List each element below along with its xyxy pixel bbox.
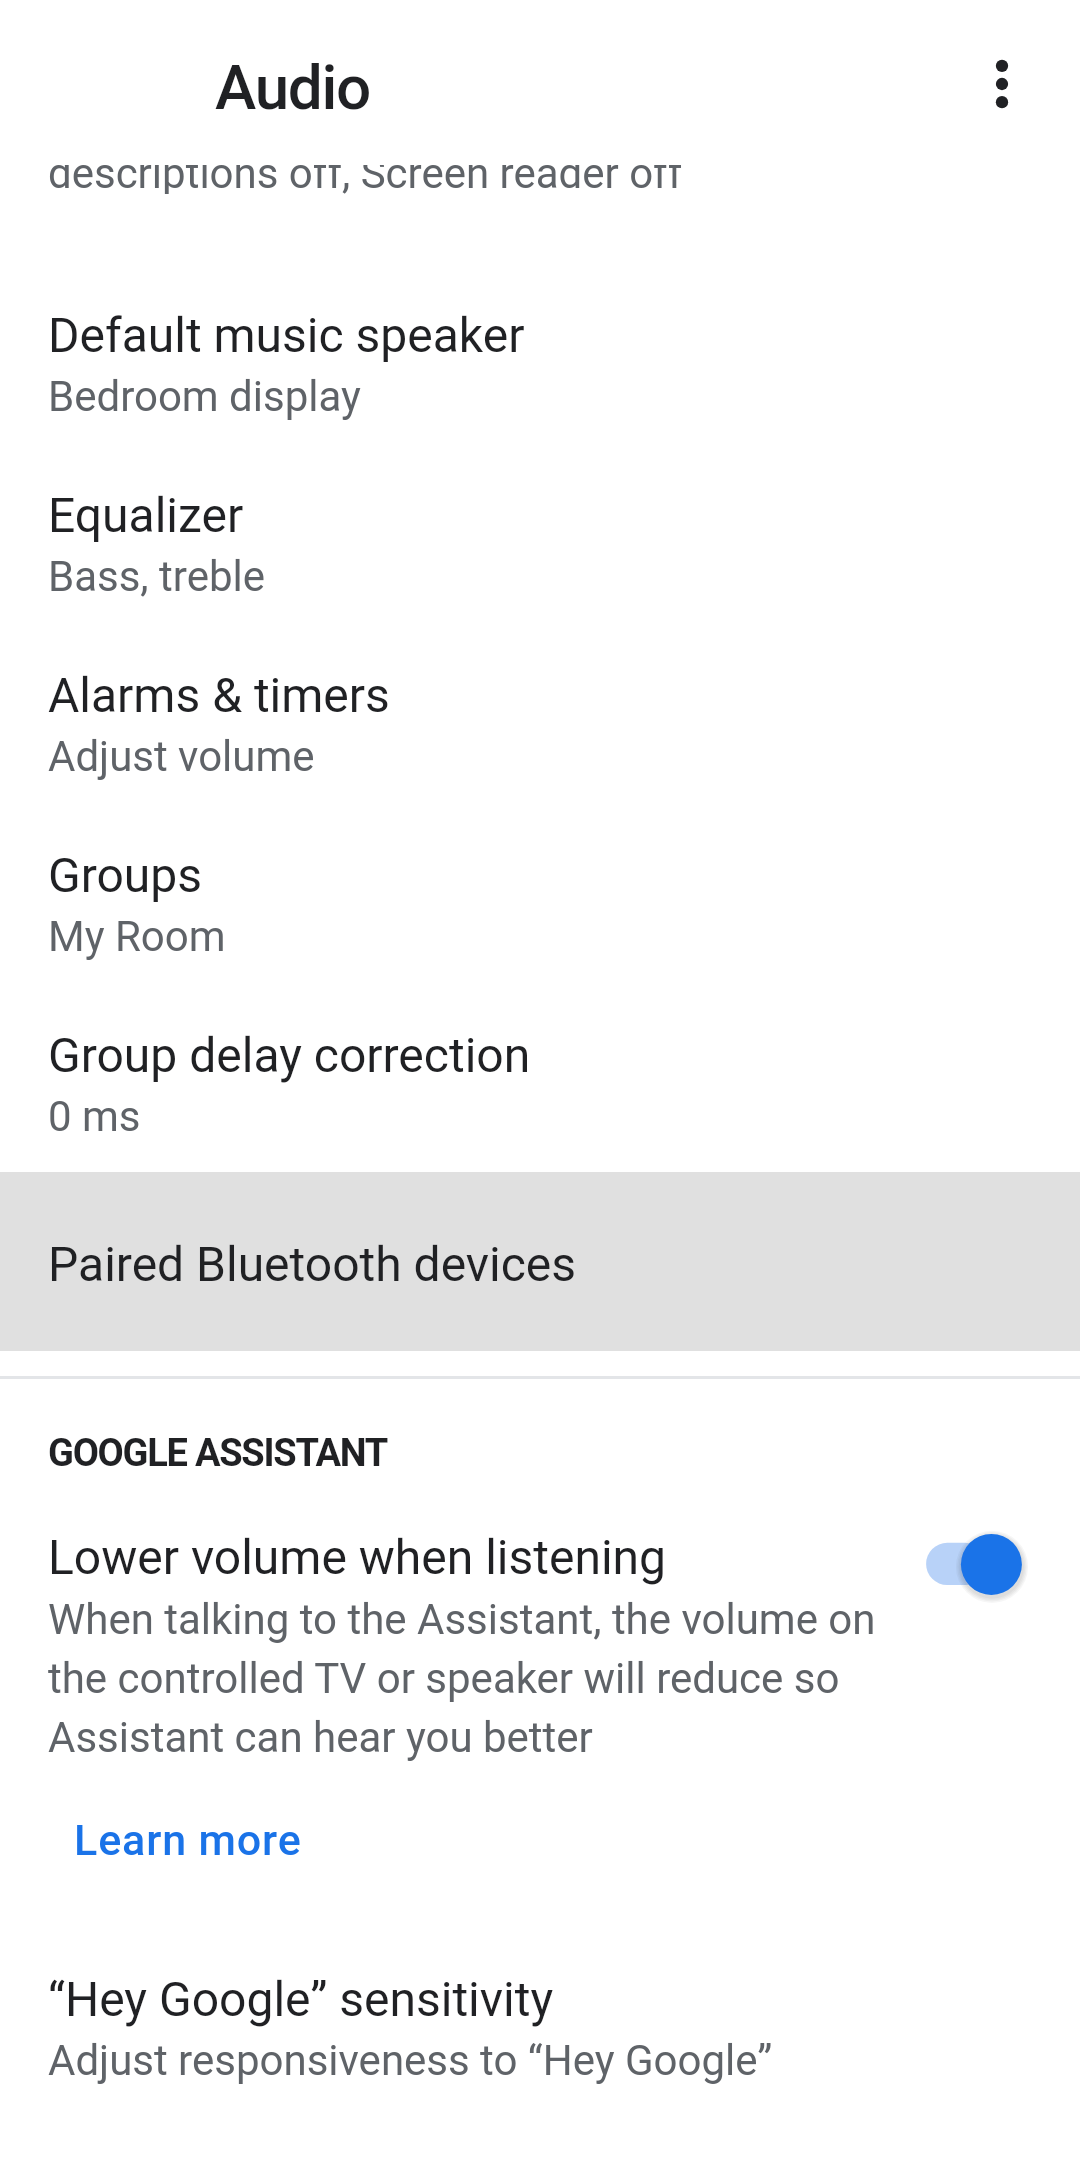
staticText: Default music speaker <box>48 307 525 363</box>
button[interactable]: Alarms & timers <box>0 651 1080 831</box>
staticText: Group delay correction <box>48 1027 531 1083</box>
staticText: Paired Bluetooth devices <box>48 1236 577 1292</box>
button[interactable]: Groups <box>0 831 1080 1011</box>
staticText: Alarms & timers <box>48 667 390 723</box>
button[interactable]: Group delay correction <box>0 1011 1080 1191</box>
staticText: GOOGLE ASSISTANT <box>48 1431 388 1476</box>
staticText: Adjust volume <box>48 732 315 781</box>
staticText: Adjust responsiveness to “Hey Google” <box>48 2036 773 2085</box>
staticText: Lower volume when listening <box>48 1529 667 1585</box>
staticText: 0 ms <box>48 1092 141 1141</box>
button[interactable]: “Hey Google” sensitivity <box>0 1955 1080 2135</box>
button[interactable]: Default music speaker <box>0 291 1080 471</box>
button[interactable]: More options <box>954 36 1050 132</box>
staticText: When talking to the Assistant, the volum… <box>48 1595 888 1762</box>
staticText: My Room <box>48 912 226 961</box>
staticText: “Hey Google” sensitivity <box>48 1971 554 2027</box>
staticText: Audio <box>215 51 371 124</box>
button[interactable]: Lower volume when listening <box>0 1529 1080 1829</box>
button[interactable]: Paired Bluetooth devices <box>0 1172 1080 1351</box>
button[interactable]: Equalizer <box>0 471 1080 651</box>
staticText: Bedroom display <box>48 372 361 421</box>
staticText: Bass, treble <box>48 552 265 601</box>
button[interactable]: Learn more <box>58 1805 318 1875</box>
staticText: Groups <box>48 847 203 903</box>
staticText: Learn more <box>74 1815 302 1865</box>
button[interactable]: Lower volume when listening toggle <box>906 1512 1046 1616</box>
button[interactable]: descriptions off, Screen reader off <box>0 165 1080 210</box>
staticText: descriptions off, Screen reader off <box>48 149 683 194</box>
staticText: Equalizer <box>48 487 244 543</box>
